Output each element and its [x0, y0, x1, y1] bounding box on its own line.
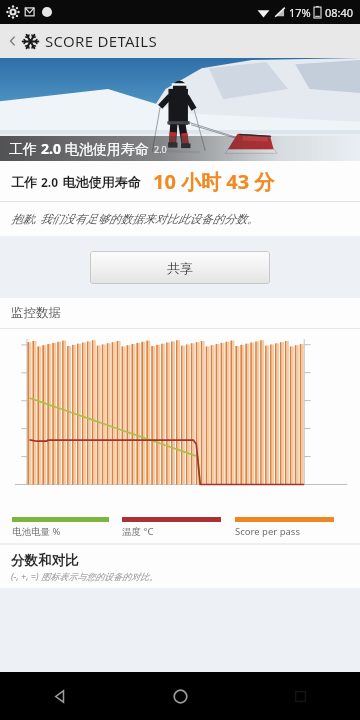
staticText: 电池电量 %: [12, 525, 61, 538]
staticText: 10 小时 43 分: [153, 168, 275, 195]
staticText: 2.0: [41, 174, 59, 190]
staticText: 17%: [289, 5, 311, 20]
staticText: 电池使用寿命: [59, 173, 141, 191]
staticText: 工作: [11, 173, 41, 191]
button[interactable]: 共享: [90, 251, 270, 284]
staticText: SCORE DETAILS: [45, 31, 157, 51]
staticText: 电池使用寿命: [61, 139, 149, 158]
staticText: 2.0: [154, 143, 167, 155]
staticText: 2.0: [41, 139, 61, 158]
button[interactable]: Back: [4, 32, 22, 50]
button[interactable]: Home: [120, 672, 240, 720]
staticText: 工作: [9, 139, 41, 158]
staticText: (-, +, =) 图标表示与您的设备的对比。: [11, 570, 158, 582]
staticText: 温度 °C: [122, 525, 154, 538]
button[interactable]: Back: [0, 672, 120, 720]
staticText: 监控数据: [11, 305, 61, 321]
staticText: 08:40: [325, 5, 354, 20]
staticText: 分数和对比: [11, 552, 79, 569]
staticText: 共享: [167, 260, 193, 276]
staticText: Score per pass: [235, 525, 300, 538]
staticText: 抱歉, 我们没有足够的数据来对比此设备的分数。: [11, 211, 259, 227]
